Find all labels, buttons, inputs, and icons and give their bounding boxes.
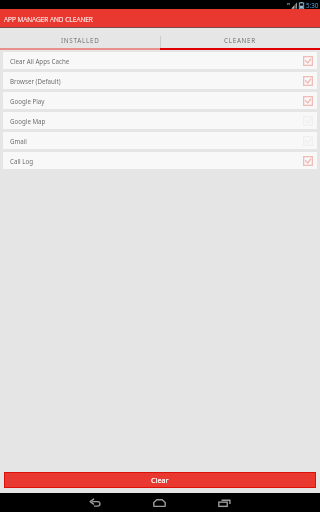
button[interactable]: CLEANER <box>160 27 320 50</box>
staticText: Call Log <box>10 157 303 165</box>
staticText: Google Play <box>10 97 303 105</box>
button[interactable]: Google Play <box>3 92 317 109</box>
staticText: 5:30 <box>306 1 319 9</box>
button[interactable]: Recent apps <box>217 493 232 512</box>
button[interactable]: INSTALLED <box>0 27 160 50</box>
button[interactable]: Clear <box>5 473 315 487</box>
staticText: Google Map <box>10 117 303 125</box>
button[interactable]: Gmail <box>3 132 317 149</box>
staticText: INSTALLED <box>61 36 100 45</box>
button[interactable]: Call Log <box>3 152 317 169</box>
staticText: Clear All Apps Cache <box>10 57 303 65</box>
staticText: CLEANER <box>224 36 256 45</box>
staticText: Clear <box>151 475 169 485</box>
button[interactable]: Clear All Apps Cache <box>3 52 317 69</box>
button[interactable]: Browser (Default) <box>3 72 317 89</box>
staticText: APP MANAGER AND CLEANER <box>4 15 93 24</box>
button[interactable]: Back <box>87 493 102 512</box>
staticText: Gmail <box>10 137 303 145</box>
staticText: Browser (Default) <box>10 77 303 85</box>
button[interactable]: Home <box>152 493 167 512</box>
button[interactable]: Google Map <box>3 112 317 129</box>
